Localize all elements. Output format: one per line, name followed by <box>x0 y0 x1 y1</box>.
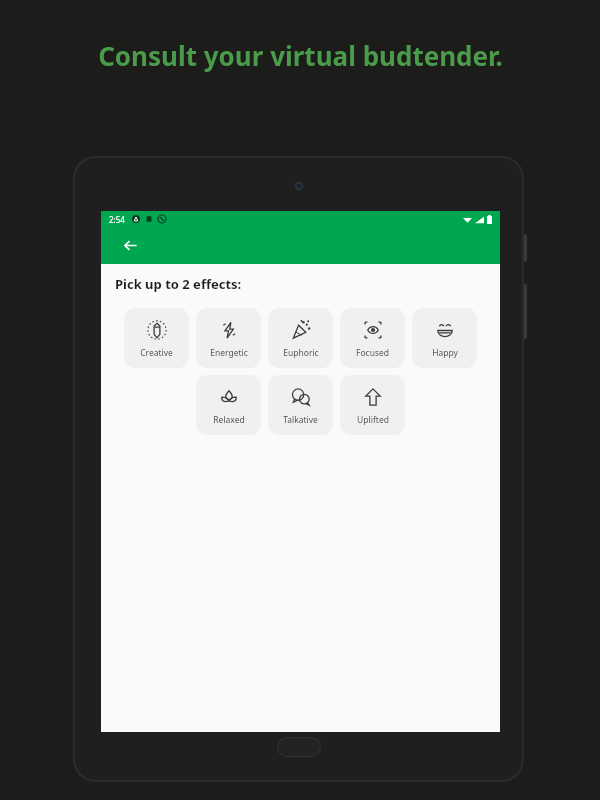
staticText: Energetic <box>210 347 248 359</box>
button[interactable]: Back <box>109 227 151 264</box>
staticText: Uplifted <box>357 414 389 426</box>
button[interactable]: Euphoric <box>268 308 333 368</box>
staticText: Creative <box>140 347 173 359</box>
button[interactable]: Relaxed <box>196 375 261 435</box>
button[interactable]: Uplifted <box>340 375 405 435</box>
staticText: Euphoric <box>283 347 319 359</box>
button[interactable]: Creative <box>124 308 189 368</box>
staticText: Pick up to 2 effects: <box>115 275 242 293</box>
button[interactable]: Happy <box>412 308 477 368</box>
staticText: 2:54 <box>109 214 125 225</box>
staticText: Relaxed <box>213 414 245 426</box>
button[interactable]: Energetic <box>196 308 261 368</box>
button[interactable]: Focused <box>340 308 405 368</box>
staticText: Talkative <box>283 414 318 426</box>
staticText: Focused <box>356 347 389 359</box>
button[interactable]: Talkative <box>268 375 333 435</box>
staticText: Consult your virtual budtender. <box>98 38 503 73</box>
staticText: Happy <box>432 347 458 359</box>
